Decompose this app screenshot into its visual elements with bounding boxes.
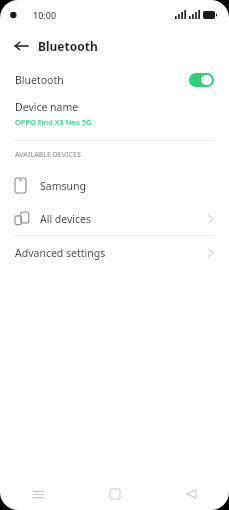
button[interactable]: Device name <box>0 97 229 130</box>
staticText: Device name <box>15 100 79 114</box>
staticText: Bluetooth <box>15 73 64 87</box>
button[interactable]: All devices <box>0 202 229 235</box>
staticText: Advanced settings <box>15 246 106 260</box>
staticText: 10:00 <box>33 9 57 21</box>
button[interactable]: Bluetooth <box>0 62 229 97</box>
button[interactable]: Bluetooth toggle <box>189 73 214 87</box>
staticText: All devices <box>40 212 92 226</box>
button[interactable]: Back <box>153 478 229 510</box>
staticText: OPPO Find X3 Neo 5G <box>15 117 92 127</box>
button[interactable]: Back <box>9 34 33 58</box>
button[interactable]: Home <box>77 478 153 510</box>
button[interactable]: Samsung <box>0 169 229 202</box>
staticText: Samsung <box>40 179 86 193</box>
staticText: AVAILABLE DEVICES <box>15 150 81 160</box>
button[interactable]: Advanced settings <box>0 236 229 269</box>
staticText: Bluetooth <box>38 38 98 54</box>
button[interactable]: Recents <box>0 478 77 510</box>
